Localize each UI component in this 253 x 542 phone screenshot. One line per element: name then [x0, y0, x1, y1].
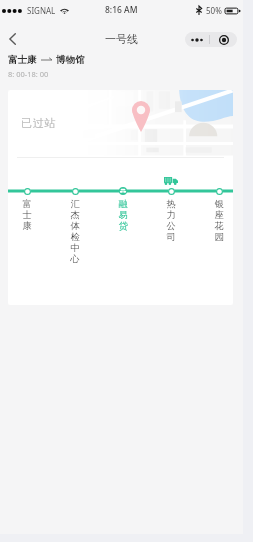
button[interactable]: 富士康 [16, 168, 38, 278]
staticText: 50% [206, 5, 222, 16]
button[interactable]: Back [3, 30, 21, 48]
staticText: 融易贷 [118, 198, 128, 232]
staticText: 一号线 [105, 32, 138, 46]
button[interactable]: 热力公司 [160, 168, 182, 278]
staticText: 已过站 [21, 116, 57, 130]
staticText: 热力公司 [166, 198, 176, 243]
staticText: SIGNAL [27, 5, 56, 16]
staticText: 银座花园 [214, 198, 224, 243]
staticText: 汇杰体检中心 [70, 198, 80, 265]
staticText: 8: 00-18: 00 [8, 69, 49, 79]
button[interactable]: 汇杰体检中心 [64, 168, 86, 278]
staticText: 博物馆 [56, 54, 85, 66]
button[interactable]: 银座花园 [208, 168, 230, 278]
staticText: 富士康 [22, 198, 32, 232]
staticText: 富士康 [8, 54, 37, 66]
button[interactable]: More options [185, 32, 237, 47]
staticText: 8:16 AM [105, 4, 138, 16]
button[interactable]: 融易贷 [112, 168, 134, 278]
